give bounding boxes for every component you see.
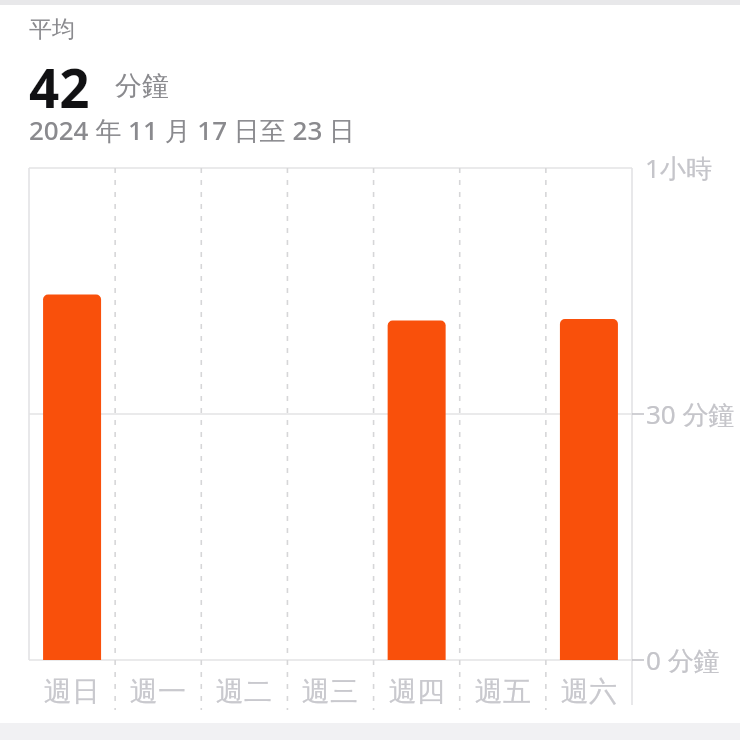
staticText: 週五: [460, 674, 546, 709]
staticText: 30 分鐘: [646, 396, 735, 432]
staticText: 0 分鐘: [646, 642, 720, 678]
button[interactable]: 週二: [201, 674, 287, 709]
button[interactable]: 週五: [460, 674, 546, 709]
staticText: 週四: [374, 674, 460, 709]
staticText: 42: [29, 51, 90, 111]
staticText: 分鐘: [115, 69, 169, 103]
button[interactable]: 週日: [29, 674, 115, 709]
staticText: 2024 年 11 月 17 日至 23 日: [29, 112, 356, 148]
button[interactable]: 週六: [546, 674, 632, 709]
staticText: 週二: [201, 674, 287, 709]
staticText: 1小時: [645, 150, 712, 186]
button[interactable]: 週三: [287, 674, 373, 709]
staticText: 週六: [546, 674, 632, 709]
button[interactable]: 週一: [115, 674, 201, 709]
staticText: 平均: [29, 15, 75, 44]
button[interactable]: Weekly duration chart card: [0, 0, 740, 723]
staticText: 週日: [29, 674, 115, 709]
staticText: 週三: [287, 674, 373, 709]
button[interactable]: 週四: [374, 674, 460, 709]
staticText: 週一: [115, 674, 201, 709]
